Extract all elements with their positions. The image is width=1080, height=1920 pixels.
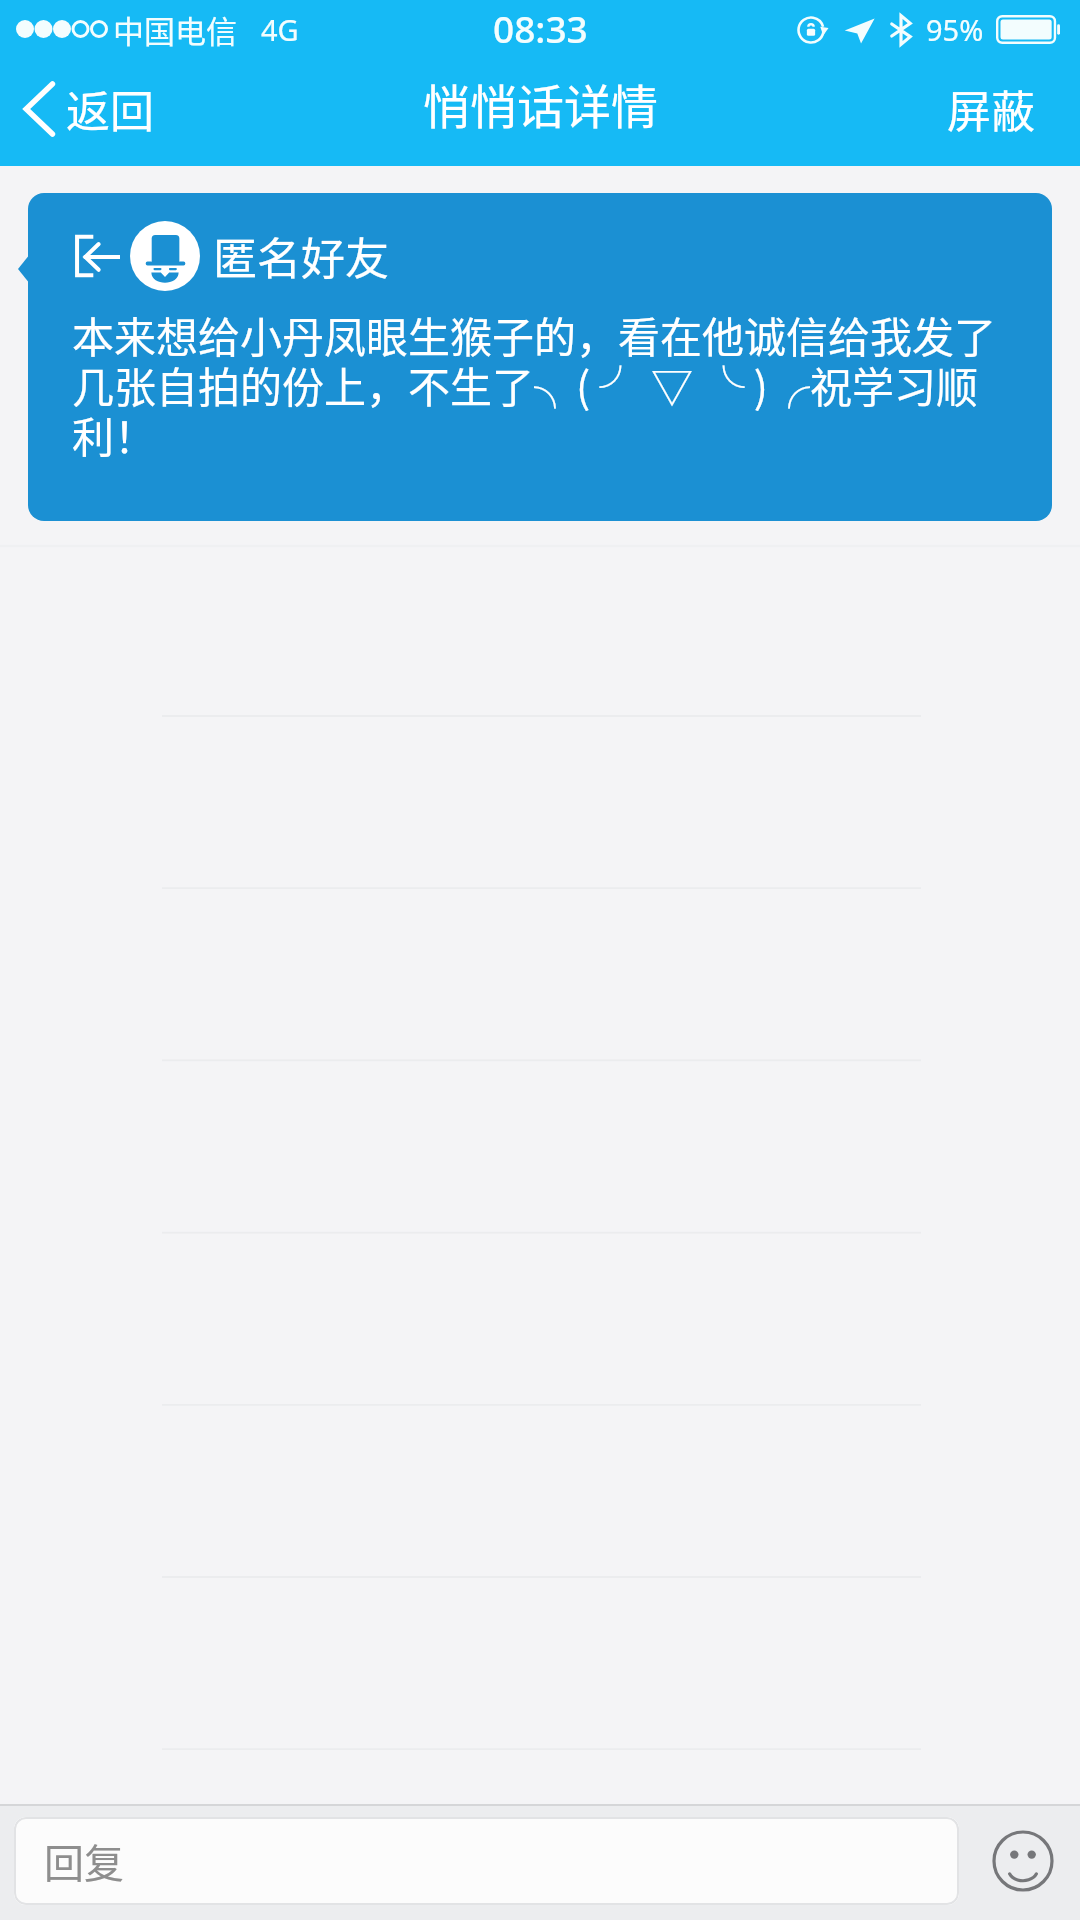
staticText: 悄悄话详情	[423, 69, 658, 137]
button[interactable]: Anonymous message	[28, 193, 1052, 521]
staticText: 屏蔽	[947, 77, 1035, 141]
staticText: 中国电信	[113, 7, 237, 52]
other: Anonymous message	[72, 233, 118, 279]
button[interactable]: Emoji	[985, 1823, 1061, 1899]
staticText: 匿名好友	[213, 224, 389, 288]
staticText: 本来想给小丹凤眼生猴子的，看在他诚信给我发了几张自拍的份上，不生了╮( ╯ ▽ …	[72, 313, 1012, 463]
staticText: 返回	[66, 77, 154, 141]
staticText: 回复	[44, 1832, 124, 1890]
button[interactable]: 屏蔽	[925, 61, 1080, 157]
button[interactable]: 返回	[0, 61, 172, 157]
button[interactable]: 回复	[14, 1817, 959, 1905]
staticText: 95%	[926, 10, 984, 49]
staticText: 4G	[261, 10, 299, 49]
staticText: 08:33	[493, 3, 588, 53]
